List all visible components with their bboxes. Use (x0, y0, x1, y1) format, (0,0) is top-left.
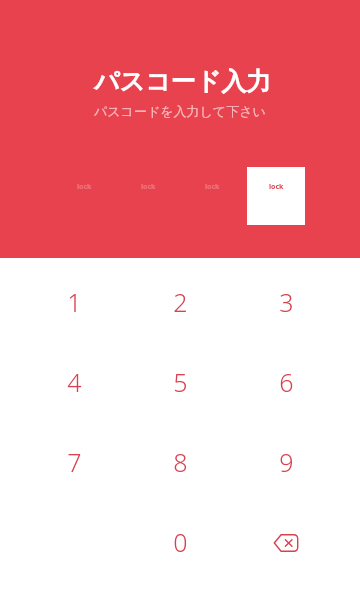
staticText: 3 (279, 285, 294, 319)
button[interactable]: lock (183, 166, 242, 225)
button[interactable]: 2 (127, 262, 233, 342)
button[interactable]: 8 (127, 422, 233, 502)
staticText: 0 (173, 525, 188, 559)
button[interactable]: 0 (127, 502, 233, 582)
staticText: 4 (67, 365, 82, 399)
staticText: 9 (279, 445, 294, 479)
button[interactable]: 7 (21, 422, 127, 502)
staticText: 8 (173, 445, 188, 479)
staticText: 5 (173, 365, 188, 399)
button[interactable]: 4 (21, 342, 127, 422)
button[interactable]: Delete (233, 502, 339, 582)
button[interactable]: lock (119, 166, 178, 225)
staticText: パスコード入力 (94, 66, 272, 97)
button[interactable]: 5 (127, 342, 233, 422)
staticText: 6 (279, 365, 294, 399)
staticText: lock (141, 182, 156, 192)
button[interactable]: 3 (233, 262, 339, 342)
staticText: 2 (173, 285, 188, 319)
button[interactable]: 1 (21, 262, 127, 342)
staticText: 1 (67, 285, 82, 319)
button[interactable]: 6 (233, 342, 339, 422)
staticText: 7 (67, 445, 82, 479)
staticText: lock (269, 182, 284, 192)
button[interactable]: lock (55, 166, 114, 225)
staticText: lock (205, 182, 220, 192)
button[interactable]: 9 (233, 422, 339, 502)
button[interactable]: lock (247, 166, 306, 225)
other: Backspace (273, 533, 299, 553)
staticText: lock (77, 182, 92, 192)
staticText: パスコードを入力して下さい (94, 103, 266, 119)
